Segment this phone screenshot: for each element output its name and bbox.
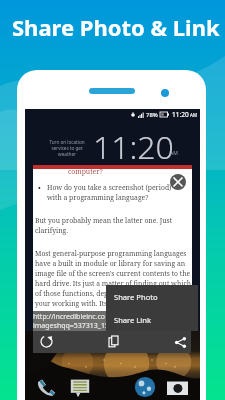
staticText: AM — [190, 112, 197, 118]
staticText: Share Photo — [114, 292, 158, 302]
button[interactable]: Share — [172, 334, 189, 351]
staticText: AM — [170, 150, 178, 157]
button[interactable]: Share Photo — [106, 285, 198, 308]
staticText: Share Link — [114, 315, 152, 325]
staticText: Turn on location services to get weather — [49, 139, 85, 157]
staticText: 11:20 — [93, 125, 174, 169]
staticText: Most general-purpose programming languag… — [35, 249, 192, 308]
staticText: imageshqq=537313_15 — [33, 321, 109, 331]
staticText: But you probably mean the latter one. Ju… — [35, 216, 173, 235]
staticText: • — [38, 183, 41, 193]
staticText: 78% — [146, 111, 158, 119]
button[interactable]: Messages — [70, 378, 90, 398]
staticText: http://incredibleinc.co — [33, 312, 106, 322]
staticText: 11:20 — [172, 110, 189, 119]
button[interactable]: Share Link — [106, 308, 198, 331]
staticText: How do you take a screenshot (period) wi… — [47, 183, 172, 202]
button[interactable]: Camera — [167, 380, 188, 395]
button[interactable]: Copy — [105, 333, 122, 350]
staticText: Share Photo & Link — [12, 12, 220, 42]
button[interactable]: Refresh — [38, 333, 55, 350]
staticText: computer? — [68, 167, 103, 176]
button[interactable]: Browser — [134, 376, 156, 398]
button[interactable]: Close — [170, 174, 186, 190]
button[interactable]: Phone — [36, 376, 56, 396]
